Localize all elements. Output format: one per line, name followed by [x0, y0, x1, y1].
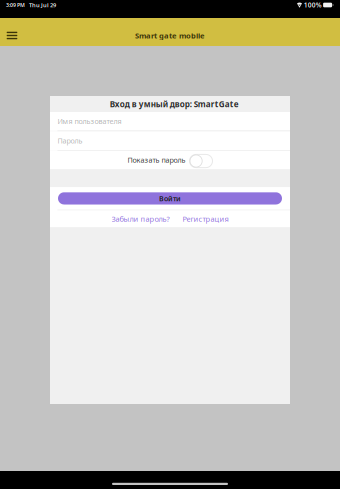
button[interactable]: Забыли пароль? — [111, 214, 169, 224]
button[interactable]: Войти — [58, 192, 282, 204]
button[interactable]: Показать пароль — [50, 151, 290, 169]
staticText: Показать пароль — [127, 155, 185, 165]
staticText: Вход в умный двор: SmartGate — [110, 98, 239, 110]
button[interactable]: Регистрация — [182, 214, 228, 224]
button[interactable]: Menu — [0, 25, 24, 46]
staticText: 100% — [304, 0, 322, 10]
staticText: Thu Jul 29 — [29, 1, 56, 9]
staticText: Пароль — [57, 136, 82, 146]
staticText: 3:09 PM — [6, 1, 25, 9]
staticText: Забыли пароль? — [111, 214, 169, 224]
staticText: Имя пользователя — [57, 116, 121, 126]
button[interactable]: Пароль — [50, 131, 290, 150]
staticText: Регистрация — [182, 214, 228, 224]
button[interactable]: Имя пользователя — [50, 112, 290, 131]
staticText: Войти — [159, 194, 181, 203]
staticText: Smart gate mobile — [135, 30, 205, 41]
